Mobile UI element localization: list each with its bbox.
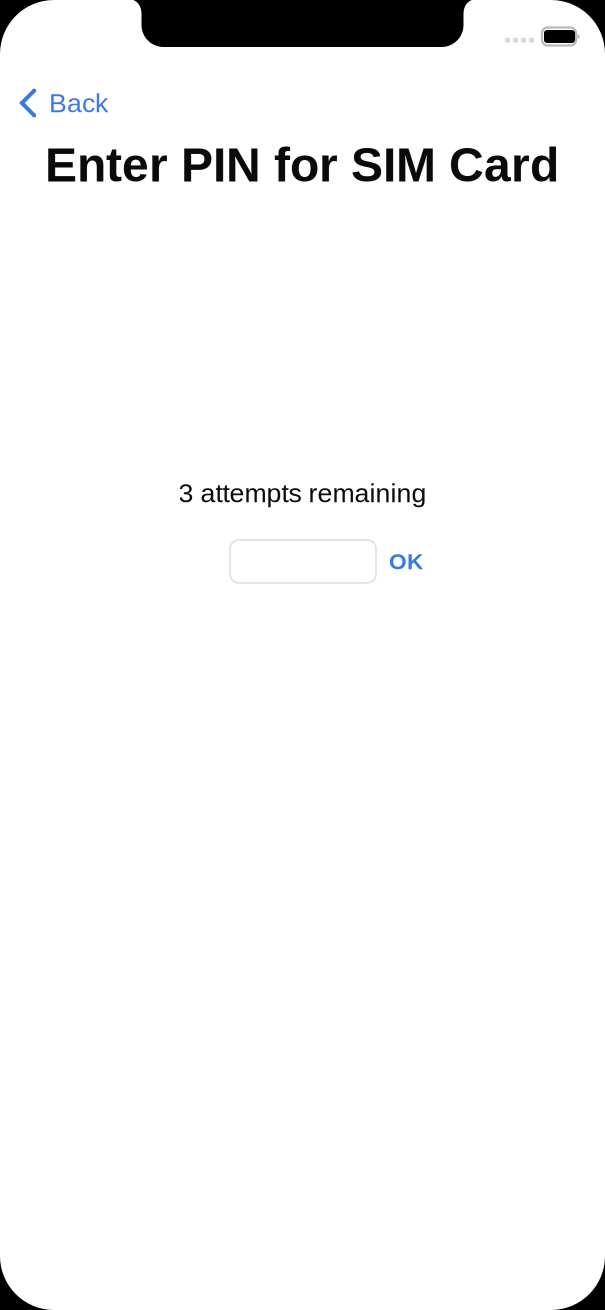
button[interactable]: OK [378,540,434,583]
staticText: Back [49,88,108,118]
staticText: 3 attempts remaining [178,478,426,508]
staticText: Enter PIN for SIM Card [45,138,559,192]
staticText: OK [389,549,423,574]
button[interactable]: Back [0,80,200,126]
